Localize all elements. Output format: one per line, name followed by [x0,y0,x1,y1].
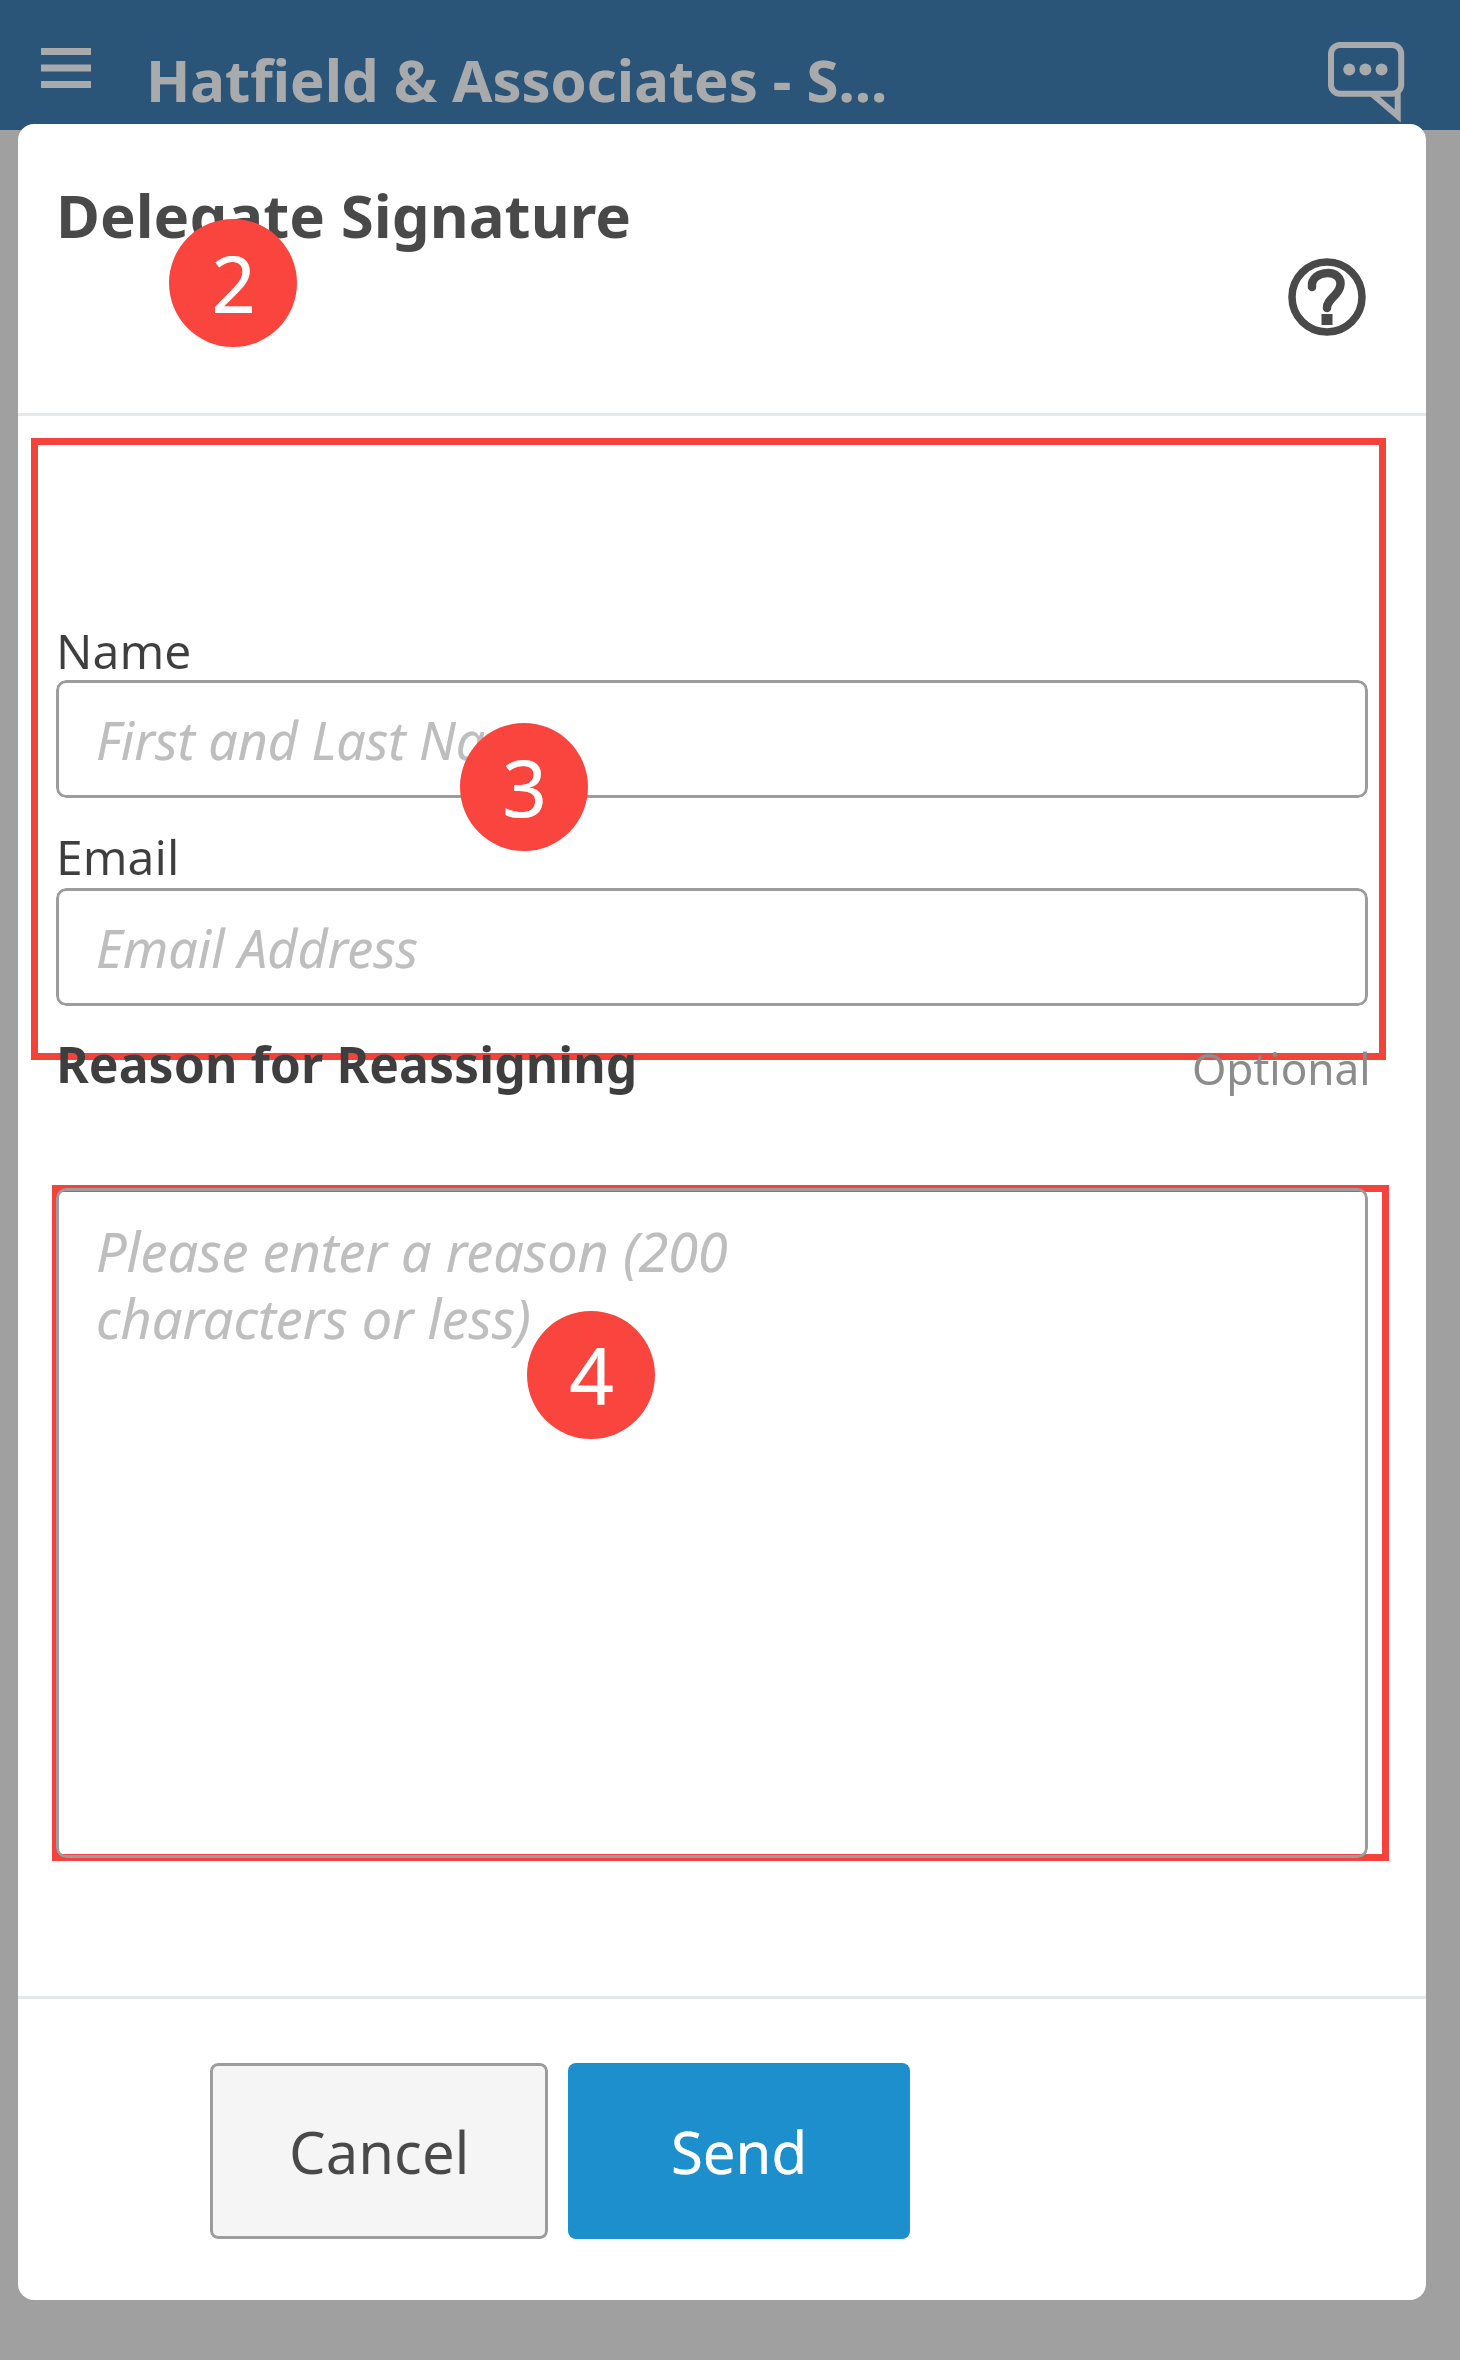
button[interactable]: Open navigation menu [24,26,108,110]
staticText: First and Last Name [96,704,557,775]
button[interactable]: Help [1274,244,1380,350]
button[interactable]: Messages [1318,30,1418,130]
staticText: Cancel [289,2112,470,2191]
button[interactable]: Send [568,2063,910,2239]
staticText: Reason for Reassigning [56,1030,638,1098]
staticText: 3 [502,734,547,840]
button[interactable]: First and Last Name [56,680,1368,798]
staticText: Delegate Signature [56,174,632,256]
button[interactable]: Please enter a reason (200 characters or… [56,1188,1368,1858]
staticText: Email Address [96,912,419,983]
staticText: Name [56,618,192,683]
staticText: Send [671,2112,808,2191]
staticText: 4 [569,1322,614,1428]
button[interactable]: Email Address [56,888,1368,1006]
staticText: Optional [1192,1038,1371,1098]
staticText: Please enter a reason (200 characters or… [96,1214,728,1355]
button[interactable]: Cancel [210,2063,548,2239]
staticText: Hatfield & Associates - S... [146,40,888,119]
staticText: 2 [211,230,256,336]
staticText: Email [56,824,180,889]
